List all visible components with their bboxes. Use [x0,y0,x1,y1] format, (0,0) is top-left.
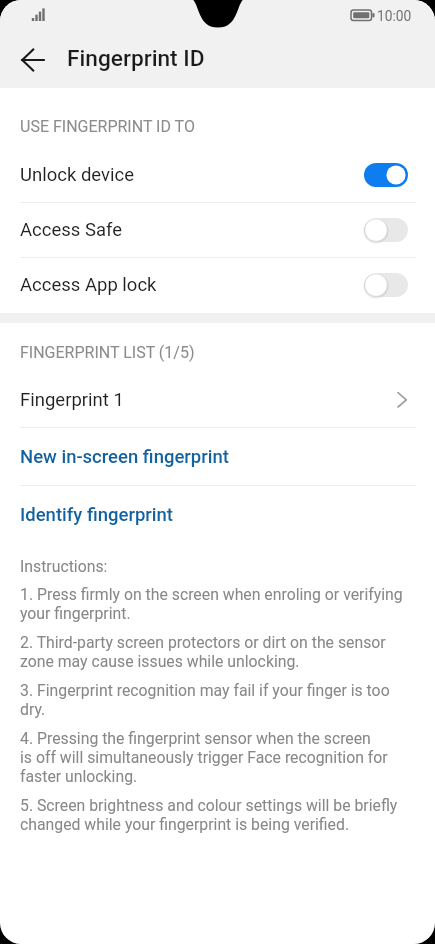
button[interactable]: New in-screen fingerprint [0,428,435,485]
staticText: 1. Press firmly on the screen when enrol… [20,585,415,623]
staticText: 10:00 [377,8,412,24]
staticText: 5. Screen brightness and colour settings… [20,796,415,834]
staticText: USE FINGERPRINT ID TO [20,117,195,136]
staticText: 2. Third-party screen protectors or dirt… [20,633,415,671]
staticText: Fingerprint ID [67,45,205,72]
staticText: New in-screen fingerprint [20,446,229,468]
staticText: 3. Fingerprint recognition may fail if y… [20,681,415,719]
staticText: Unlock device [20,164,134,186]
staticText: Instructions: [20,557,108,576]
staticText: Access App lock [20,274,157,296]
button[interactable]: Back [11,36,58,83]
staticText: FINGERPRINT LIST (1/5) [20,343,195,362]
button[interactable]: Unlock device [0,148,435,202]
staticText: Access Safe [20,219,123,241]
button[interactable]: Identify fingerprint [0,486,435,544]
staticText: 4. Pressing the fingerprint sensor when … [20,729,415,786]
staticText: Fingerprint 1 [20,389,124,411]
button[interactable]: Access Safe [0,203,435,257]
button[interactable]: Access App lock [0,258,435,312]
button[interactable]: Fingerprint 1 [0,372,435,427]
staticText: Identify fingerprint [20,504,174,526]
